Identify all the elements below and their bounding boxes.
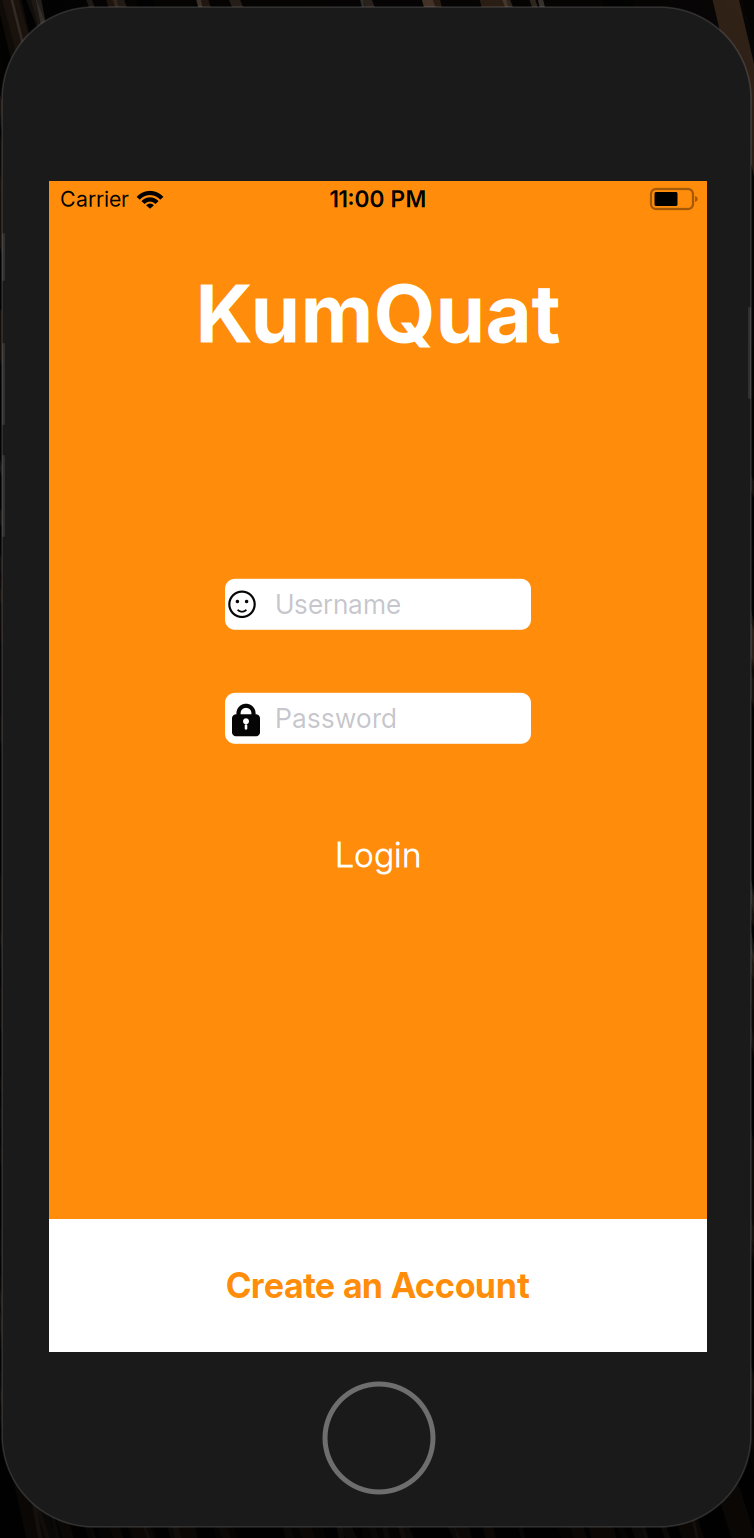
button[interactable]: Login xyxy=(301,829,455,881)
staticText: KumQuat xyxy=(195,265,560,362)
staticText: Create an Account xyxy=(226,1264,530,1306)
staticText: Username xyxy=(275,588,401,620)
staticText: Carrier xyxy=(60,186,129,212)
staticText: 11:00 PM xyxy=(329,185,426,213)
staticText: Login xyxy=(335,834,421,876)
staticText: Password xyxy=(275,702,397,734)
button[interactable]: Create an Account xyxy=(49,1219,707,1352)
button[interactable]: Password xyxy=(225,693,531,744)
button[interactable]: Username xyxy=(225,579,531,630)
